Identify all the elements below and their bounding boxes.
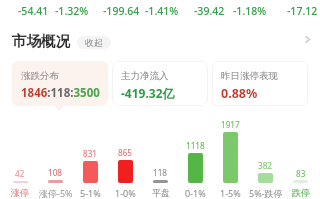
staticText: 1-5%	[220, 187, 241, 199]
staticText: 0-1%	[185, 187, 206, 199]
staticText: 0.88%	[221, 85, 258, 102]
button[interactable]: 收起	[77, 36, 111, 49]
staticText: 108	[48, 167, 63, 178]
staticText: 1846:118:3500	[21, 85, 100, 101]
staticText: 涨跌分布	[21, 70, 59, 82]
staticText: 涨停-5%	[39, 187, 73, 199]
staticText: 1917	[221, 119, 240, 130]
staticText: -1.32%	[55, 4, 89, 18]
staticText: 1-0%	[115, 187, 136, 199]
staticText: 865	[118, 147, 133, 158]
staticText: 平盘	[152, 187, 170, 198]
staticText: 主力净流入	[121, 70, 169, 82]
staticText: 831	[83, 148, 98, 159]
staticText: 跌停	[292, 187, 310, 198]
staticText: -39.42	[194, 4, 225, 18]
staticText: -199.64	[103, 4, 140, 18]
staticText: 收起	[85, 37, 103, 48]
staticText: -17.12	[287, 4, 318, 18]
staticText: 42	[15, 168, 25, 179]
staticText: 市场概况	[12, 32, 70, 50]
button[interactable]: 涨跌分布	[12, 61, 108, 106]
button[interactable]: 昨日涨停表现	[212, 61, 308, 106]
staticText: 382	[258, 160, 273, 171]
staticText: -1.41%	[145, 4, 179, 18]
staticText: -1.18%	[233, 4, 267, 18]
staticText: 5%-跌停	[249, 187, 283, 199]
button[interactable]: More	[298, 30, 316, 48]
staticText: 5-1%	[80, 187, 101, 199]
staticText: -54.41	[18, 4, 49, 18]
staticText: 118	[153, 167, 168, 178]
staticText: 1118	[186, 140, 205, 151]
staticText: -419.32亿	[121, 85, 175, 101]
button[interactable]: 主力净流入	[112, 61, 208, 106]
staticText: 昨日涨停表现	[221, 70, 278, 82]
staticText: 83	[296, 168, 306, 179]
staticText: 涨停	[11, 187, 29, 198]
